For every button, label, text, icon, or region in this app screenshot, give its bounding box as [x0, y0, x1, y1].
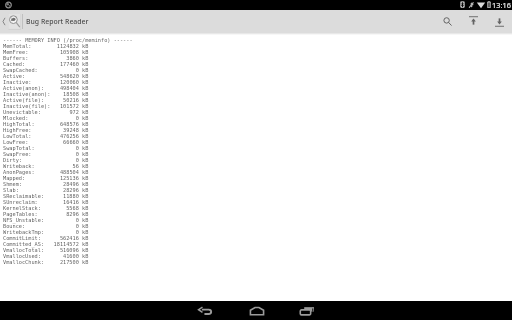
staticText: Bug Report Reader — [26, 17, 89, 26]
button[interactable]: Search — [435, 10, 460, 33]
button[interactable]: Back — [186, 301, 224, 320]
button[interactable]: Navigate up — [0, 10, 23, 33]
button[interactable]: Jump to top — [460, 10, 486, 33]
staticText: 13:16 — [492, 0, 511, 10]
button[interactable]: Recent apps — [288, 301, 326, 320]
staticText: ------ MEMORY INFO (/proc/meminfo) -----… — [3, 37, 133, 265]
button[interactable]: Home — [238, 301, 276, 320]
button[interactable]: Jump to bottom — [486, 10, 512, 33]
